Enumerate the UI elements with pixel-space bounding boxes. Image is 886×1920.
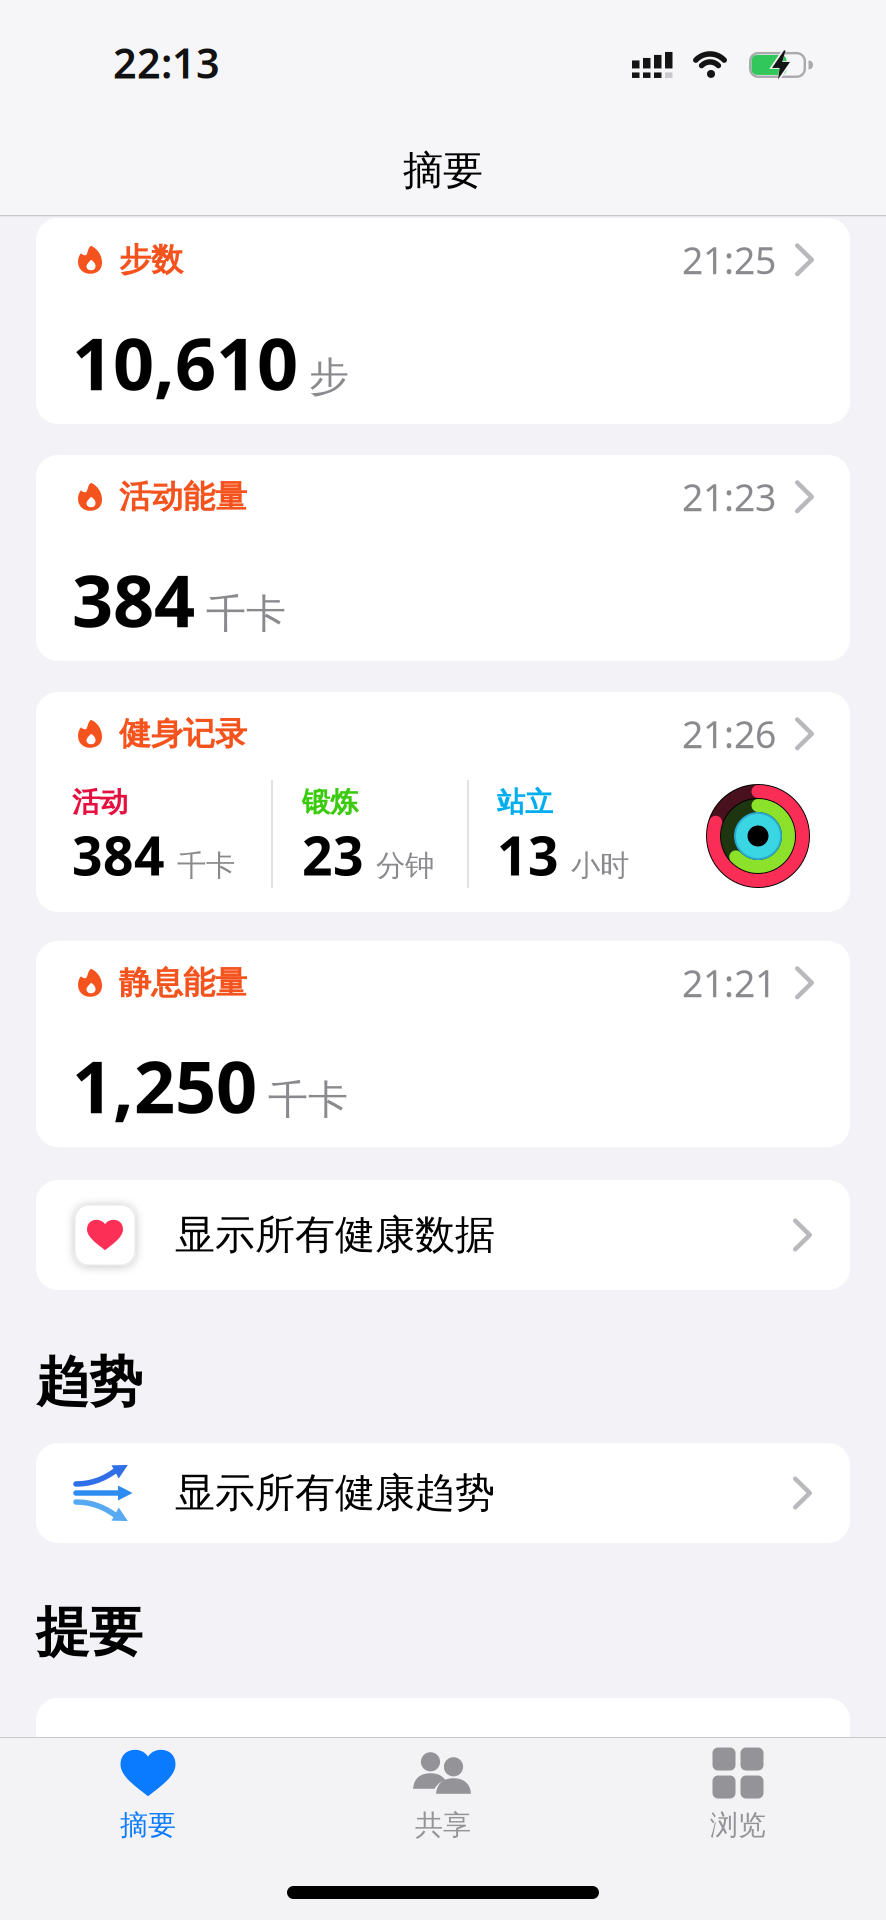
staticText: 13 [497, 819, 559, 890]
staticText: 共享 [415, 1808, 471, 1842]
staticText: 千卡 [177, 848, 235, 884]
staticText: 步数 [119, 240, 183, 279]
button[interactable]: 步数 [36, 218, 850, 424]
staticText: 384 [72, 819, 165, 890]
staticText: 显示所有健康趋势 [175, 1468, 495, 1517]
staticText: 1,250 [72, 1038, 257, 1133]
staticText: 小时 [571, 848, 629, 884]
staticText: 健身记录 [119, 714, 247, 753]
staticText: 分钟 [376, 848, 434, 884]
staticText: 锻炼 [302, 785, 358, 819]
button[interactable]: 显示所有健康趋势 [36, 1443, 850, 1543]
button[interactable]: 显示所有健康数据 [36, 1180, 850, 1290]
staticText: 活动 [72, 785, 128, 819]
staticText: 21:23 [682, 472, 776, 522]
staticText: 站立 [497, 785, 553, 819]
staticText: 384 [72, 552, 195, 647]
staticText: 活动能量 [119, 477, 247, 516]
button[interactable]: 静息能量 [36, 941, 850, 1147]
staticText: 22:13 [113, 35, 220, 90]
button[interactable]: 共享 [295, 1748, 590, 1842]
staticText: 提要 [36, 1599, 142, 1665]
staticText: 摘要 [120, 1808, 176, 1842]
staticText: 静息能量 [119, 963, 247, 1002]
staticText: 23 [302, 819, 364, 890]
button[interactable]: 浏览 [590, 1748, 885, 1842]
staticText: 21:21 [682, 958, 776, 1008]
staticText: 步 [309, 352, 349, 401]
button[interactable]: 摘要 [0, 1748, 295, 1842]
staticText: 千卡 [268, 1075, 348, 1124]
staticText: 趋势 [36, 1349, 142, 1415]
staticText: 10,610 [72, 315, 298, 410]
button[interactable]: 健身记录 [36, 692, 850, 912]
staticText: 显示所有健康数据 [175, 1210, 495, 1259]
button[interactable]: 活动能量 [36, 455, 850, 661]
staticText: 千卡 [206, 589, 286, 638]
staticText: 21:26 [682, 709, 776, 759]
staticText: 摘要 [403, 146, 483, 195]
staticText: 浏览 [710, 1808, 766, 1842]
staticText: 21:25 [682, 235, 776, 285]
